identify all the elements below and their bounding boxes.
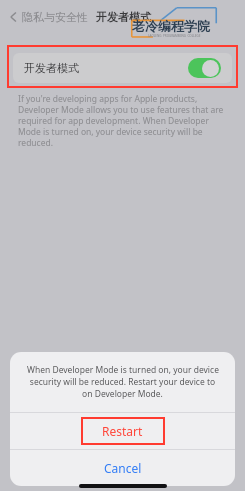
staticText: 开发者模式: [24, 61, 79, 75]
staticText: Developer Mode allows you to use feature…: [18, 104, 224, 115]
staticText: reduced.: [18, 137, 53, 148]
button[interactable]: Restart: [10, 413, 235, 449]
button[interactable]: Cancel: [10, 450, 235, 486]
staticText: Restart: [102, 423, 143, 439]
staticText: When Developer Mode is turned on, your d…: [27, 364, 219, 376]
staticText: on Developer Mode.: [82, 388, 163, 400]
staticText: LAOLENG PROGRAMMING COLLEGE: [148, 34, 201, 38]
button[interactable]: Developer Mode toggle, on: [188, 58, 221, 78]
staticText: required for app development. When Devel…: [18, 115, 209, 126]
button[interactable]: 开发者模式: [13, 53, 232, 83]
staticText: 老冷编程学院: [132, 18, 210, 34]
staticText: Mode is turned on, your device security …: [18, 126, 203, 137]
staticText: Cancel: [104, 460, 142, 476]
staticText: 隐私与安全性: [22, 10, 88, 24]
staticText: 开发者模式: [96, 10, 151, 24]
staticText: security will be reduced. Restart your d…: [22, 376, 223, 388]
button[interactable]: Back to 隐私与安全性: [6, 6, 90, 28]
staticText: If you're developing apps for Apple prod…: [18, 93, 198, 104]
